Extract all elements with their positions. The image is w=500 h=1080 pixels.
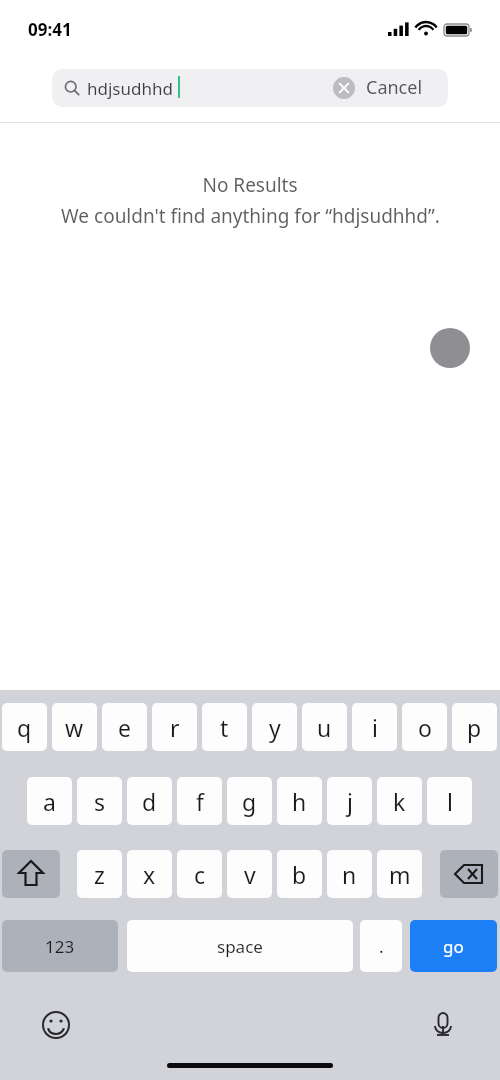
button[interactable]: r (152, 703, 197, 751)
button[interactable]: Clear text (333, 77, 355, 99)
button[interactable]: o (402, 703, 447, 751)
staticText: 123 (45, 935, 75, 958)
button[interactable]: Emoji keyboard (36, 1005, 76, 1045)
button[interactable]: space (127, 920, 353, 972)
button[interactable]: t (202, 703, 247, 751)
staticText: 09:41 (28, 18, 72, 41)
staticText: No Results (202, 172, 298, 198)
staticText: x (143, 859, 156, 890)
button[interactable]: s (77, 777, 122, 825)
staticText: j (347, 786, 353, 817)
staticText: s (94, 786, 106, 817)
button[interactable]: g (227, 777, 272, 825)
button[interactable]: a (27, 777, 72, 825)
button[interactable]: w (52, 703, 97, 751)
staticText: d (142, 786, 157, 817)
staticText: go (443, 935, 464, 958)
staticText: l (447, 786, 453, 817)
button[interactable]: z (77, 850, 122, 898)
staticText: h (292, 786, 307, 817)
button[interactable]: c (177, 850, 222, 898)
button[interactable]: p (452, 703, 497, 751)
staticText: We couldn't find anything for “hdjsudhhd… (61, 203, 440, 229)
button[interactable]: l (427, 777, 472, 825)
button[interactable]: Cancel (366, 75, 423, 100)
button[interactable]: n (327, 850, 372, 898)
button[interactable]: Avatar (430, 328, 470, 368)
staticText: y (269, 712, 281, 743)
button[interactable]: u (302, 703, 347, 751)
staticText: z (94, 859, 105, 890)
staticText: r (170, 712, 180, 743)
button[interactable]: m (377, 850, 422, 898)
button[interactable]: i (352, 703, 397, 751)
other: Search (64, 80, 80, 96)
staticText: g (242, 786, 257, 817)
button[interactable]: Backspace (440, 850, 498, 898)
staticText: t (220, 712, 229, 743)
staticText: v (244, 859, 256, 890)
button[interactable]: q (2, 703, 47, 751)
button[interactable]: f (177, 777, 222, 825)
staticText: k (393, 786, 406, 817)
button[interactable]: e (102, 703, 147, 751)
staticText: c (194, 859, 206, 890)
staticText: u (317, 712, 332, 743)
button[interactable]: j (327, 777, 372, 825)
staticText: space (217, 935, 263, 958)
button[interactable]: Dictation (423, 1005, 463, 1045)
button[interactable]: y (252, 703, 297, 751)
staticText: q (17, 712, 32, 743)
staticText: Cancel (366, 75, 423, 100)
staticText: o (418, 712, 432, 743)
staticText: hdjsudhhd (87, 77, 173, 100)
button[interactable]: d (127, 777, 172, 825)
staticText: w (65, 712, 84, 743)
button[interactable]: b (277, 850, 322, 898)
staticText: n (342, 859, 357, 890)
button[interactable]: x (127, 850, 172, 898)
staticText: i (372, 712, 378, 743)
button[interactable]: . (360, 920, 402, 972)
staticText: p (467, 712, 482, 743)
button[interactable]: 123 (2, 920, 118, 972)
staticText: a (43, 786, 56, 817)
button[interactable]: Shift (2, 850, 60, 898)
staticText: b (292, 859, 307, 890)
button[interactable]: v (227, 850, 272, 898)
staticText: f (196, 786, 204, 817)
staticText: m (389, 859, 411, 890)
button[interactable]: k (377, 777, 422, 825)
staticText: e (118, 712, 131, 743)
button[interactable]: go (410, 920, 497, 972)
staticText: . (379, 935, 384, 958)
button[interactable]: h (277, 777, 322, 825)
